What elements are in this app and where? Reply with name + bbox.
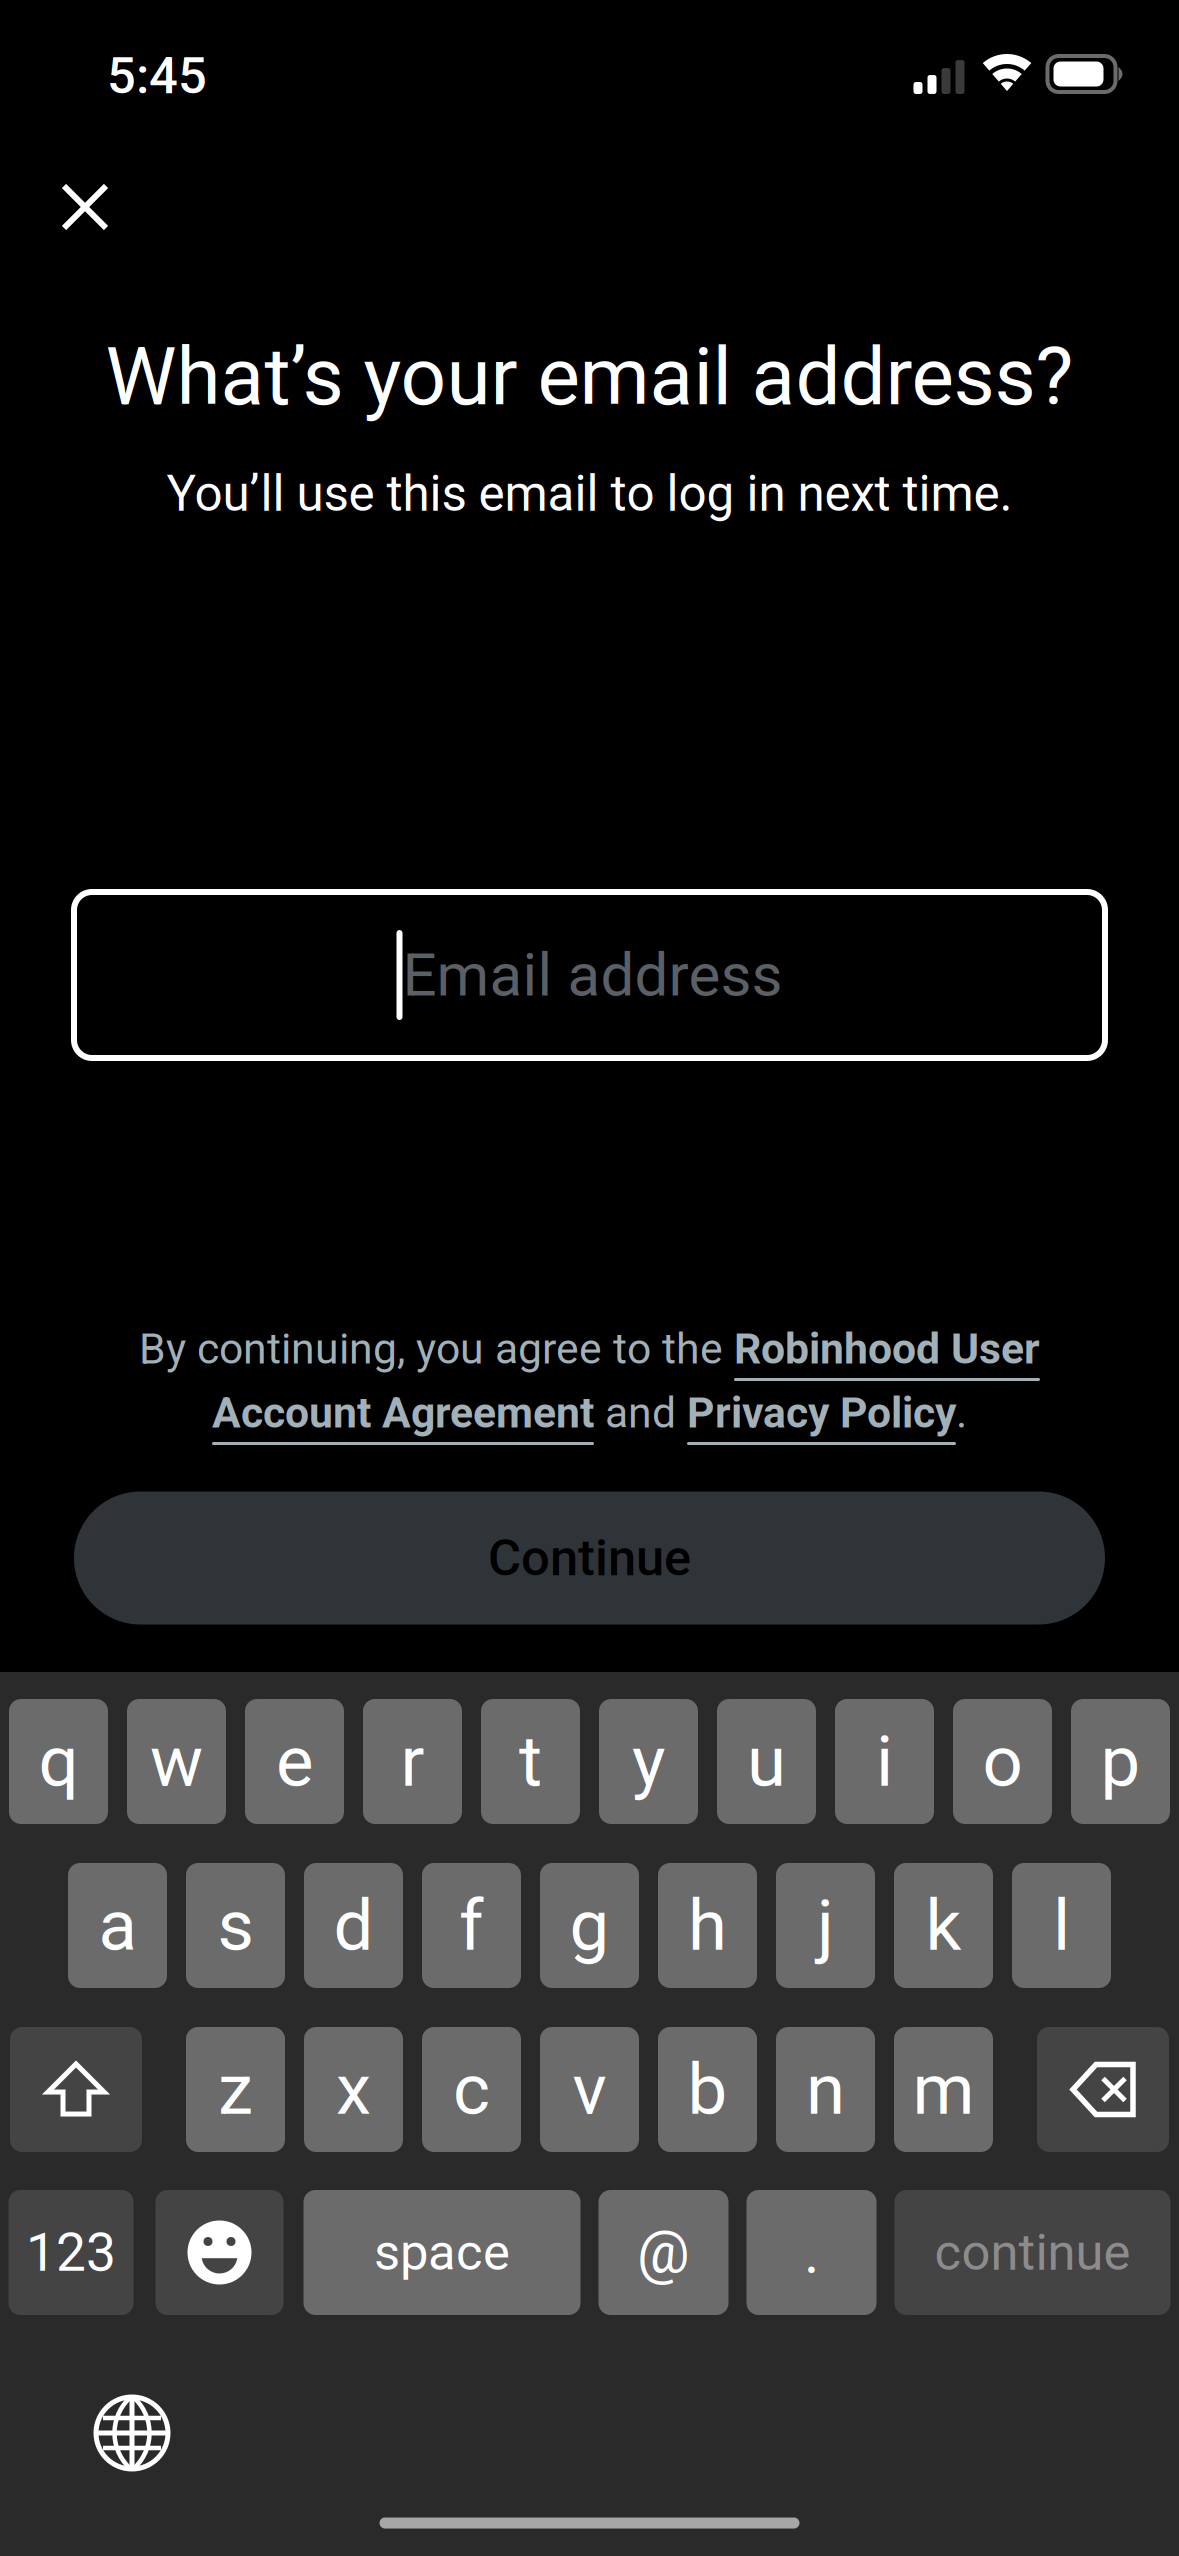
button[interactable]: b: [658, 2027, 757, 2152]
button[interactable]: 123: [8, 2190, 133, 2315]
button[interactable]: Next keyboard: [92, 2393, 172, 2473]
button[interactable]: v: [540, 2027, 639, 2152]
staticText: 123: [26, 2221, 116, 2284]
staticText: o: [982, 1720, 1022, 1803]
staticText: r: [400, 1720, 424, 1803]
staticText: h: [688, 1884, 727, 1967]
button[interactable]: m: [894, 2027, 993, 2152]
staticText: g: [569, 1884, 609, 1967]
staticText: What’s your email address?: [105, 330, 1073, 424]
button[interactable]: space: [303, 2190, 580, 2315]
button[interactable]: e: [245, 1699, 344, 1824]
staticText: Robinhood User: [734, 1324, 1040, 1374]
button[interactable]: d: [304, 1863, 403, 1988]
button[interactable]: i: [835, 1699, 934, 1824]
staticText: continue: [934, 2223, 1130, 2282]
button[interactable]: z: [186, 2027, 285, 2152]
button[interactable]: q: [9, 1699, 108, 1824]
staticText: Account Agreement: [212, 1388, 594, 1438]
staticText: p: [1100, 1720, 1140, 1803]
staticText: a: [98, 1884, 136, 1967]
button[interactable]: Emoji: [155, 2190, 283, 2315]
staticText: 5:45: [107, 46, 207, 106]
staticText: v: [572, 2048, 606, 2131]
staticText: k: [925, 1884, 961, 1967]
staticText: u: [747, 1720, 786, 1803]
button[interactable]: p: [1071, 1699, 1170, 1824]
button[interactable]: w: [127, 1699, 226, 1824]
staticText: j: [817, 1884, 834, 1967]
button[interactable]: r: [363, 1699, 462, 1824]
button[interactable]: f: [422, 1863, 521, 1988]
staticText: x: [336, 2048, 371, 2131]
button[interactable]: u: [717, 1699, 816, 1824]
staticText: n: [806, 2048, 845, 2131]
staticText: Continue: [488, 1528, 691, 1588]
staticText: y: [632, 1720, 665, 1803]
button[interactable]: o: [953, 1699, 1052, 1824]
button[interactable]: x: [304, 2027, 403, 2152]
staticText: e: [276, 1720, 313, 1803]
button[interactable]: l: [1012, 1863, 1111, 1988]
staticText: c: [453, 2048, 490, 2131]
staticText: Privacy Policy: [687, 1388, 956, 1438]
staticText: and: [594, 1388, 687, 1438]
button[interactable]: c: [422, 2027, 521, 2152]
button[interactable]: Robinhood User: [734, 1324, 1040, 1374]
button[interactable]: Shift: [10, 2027, 142, 2152]
staticText: f: [459, 1884, 484, 1967]
button[interactable]: t: [481, 1699, 580, 1824]
staticText: q: [38, 1720, 78, 1803]
staticText: Email address: [402, 940, 782, 1010]
staticText: i: [876, 1720, 893, 1803]
button[interactable]: Close: [33, 155, 137, 259]
button[interactable]: n: [776, 2027, 875, 2152]
button[interactable]: h: [658, 1863, 757, 1988]
staticText: .: [804, 2218, 819, 2287]
staticText: b: [687, 2048, 727, 2131]
staticText: s: [217, 1884, 253, 1967]
button[interactable]: Continue: [74, 1491, 1105, 1624]
button[interactable]: .: [746, 2190, 876, 2315]
button[interactable]: Account Agreement: [212, 1388, 594, 1438]
staticText: .: [956, 1388, 967, 1438]
button[interactable]: j: [776, 1863, 875, 1988]
button[interactable]: a: [68, 1863, 167, 1988]
button[interactable]: Delete: [1037, 2027, 1169, 2152]
button[interactable]: g: [540, 1863, 639, 1988]
button[interactable]: k: [894, 1863, 993, 1988]
button[interactable]: continue: [894, 2190, 1170, 2315]
button[interactable]: s: [186, 1863, 285, 1988]
staticText: w: [150, 1720, 203, 1803]
staticText: z: [218, 2048, 253, 2131]
staticText: d: [333, 1884, 373, 1967]
staticText: m: [912, 2048, 974, 2131]
button[interactable]: Privacy Policy: [687, 1388, 956, 1438]
staticText: space: [374, 2223, 510, 2282]
staticText: l: [1053, 1884, 1070, 1967]
button[interactable]: @: [598, 2190, 728, 2315]
staticText: By continuing, you agree to the: [139, 1324, 734, 1374]
button[interactable]: y: [599, 1699, 698, 1824]
staticText: @: [637, 2218, 690, 2287]
staticText: You’ll use this email to log in next tim…: [166, 465, 1012, 523]
staticText: t: [519, 1720, 542, 1803]
